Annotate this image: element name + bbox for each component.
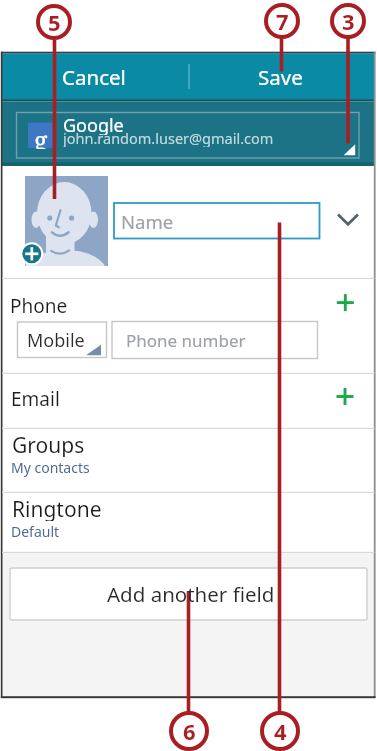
button[interactable]: Save [230,57,331,96]
button[interactable]: Groups [2,429,374,492]
button[interactable] [328,380,361,413]
button[interactable]: Add another field [12,568,369,620]
button[interactable]: Mobile [18,322,107,358]
button[interactable]: Name [114,203,320,239]
staticText: Name [121,209,174,234]
staticText: Google [63,113,124,135]
button[interactable]: g [16,112,359,158]
staticText: Default [11,522,60,541]
staticText: 6 [183,716,196,746]
button[interactable]: Ringtone [2,493,374,552]
button[interactable] [25,176,108,266]
staticText: Phone [10,293,68,317]
button[interactable] [329,286,362,319]
staticText: 5 [48,7,61,37]
button[interactable] [331,197,365,231]
staticText: 4 [274,716,287,746]
staticText: g [34,123,48,149]
staticText: 7 [276,6,289,36]
staticText: Mobile [27,328,85,353]
staticText: Groups [12,431,85,457]
staticText: john.random.luser@gmail.com [63,128,274,147]
button[interactable]: Phone number [112,322,318,359]
staticText: Email [11,386,60,410]
staticText: Ringtone [12,495,102,521]
staticText: My contacts [11,458,90,477]
staticText: Cancel [62,63,126,91]
staticText: Save [258,63,303,91]
button[interactable]: Cancel [43,57,145,96]
staticText: Add another field [107,580,275,608]
staticText: Phone number [126,329,246,352]
staticText: 3 [342,6,355,36]
